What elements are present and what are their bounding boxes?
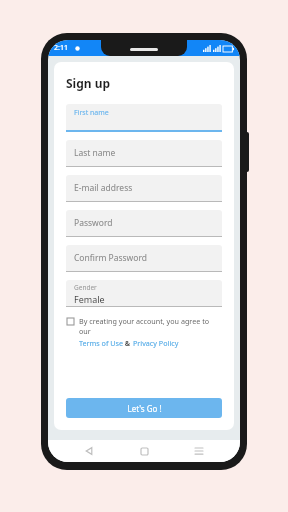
staticText: E-mail address [74,182,133,194]
staticText: Female [74,293,105,305]
staticText: By creating your account, you agree to o… [79,316,222,336]
button[interactable]: Home [130,440,158,462]
button[interactable]: Confirm Password [66,245,222,272]
staticText: Gender [74,283,97,292]
button[interactable]: First name [66,104,222,132]
staticText: 2:11 [54,43,68,53]
staticText: Privacy Policy [133,338,179,348]
button[interactable]: Back [75,440,103,462]
button[interactable]: Last name [66,140,222,167]
button[interactable]: Recent apps [185,440,213,462]
button[interactable]: E-mail address [66,175,222,202]
button[interactable]: Let's Go ! [66,398,222,418]
button[interactable]: Password [66,210,222,237]
button[interactable]: Gender [66,280,222,307]
staticText: Confirm Password [74,252,147,264]
staticText: Let's Go ! [127,403,162,414]
staticText: First name [74,108,109,118]
staticText: & [123,338,133,348]
staticText: Terms of Use [79,338,123,348]
staticText: Sign up [66,75,111,91]
staticText: Last name [74,147,116,159]
staticText: Password [74,217,113,229]
button[interactable]: By creating your account, you agree to o… [66,316,222,348]
